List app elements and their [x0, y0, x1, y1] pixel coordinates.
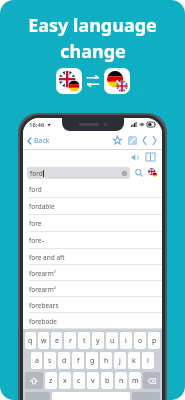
- button[interactable]: fore and aft: [23, 249, 162, 265]
- staticText: Back: [34, 136, 50, 146]
- button[interactable]: Search: [134, 168, 144, 178]
- button[interactable]: fore–: [23, 232, 162, 249]
- button[interactable]: v: [87, 372, 99, 389]
- button[interactable]: Next: [151, 135, 158, 146]
- button[interactable]: Pronounce: [130, 153, 140, 162]
- button[interactable]: fore: [23, 215, 162, 232]
- staticText: t: [83, 336, 86, 346]
- button[interactable]: Previous: [141, 135, 148, 146]
- button[interactable]: forebode: [23, 313, 162, 329]
- button[interactable]: f: [72, 352, 84, 369]
- staticText: forearm¹: [29, 269, 57, 278]
- staticText: i: [125, 336, 127, 346]
- button[interactable]: Key: [25, 372, 43, 389]
- button[interactable]: ford: [23, 181, 162, 198]
- button[interactable]: o: [134, 332, 146, 349]
- staticText: y: [96, 336, 100, 346]
- staticText: Easy language: [28, 13, 157, 38]
- button[interactable]: l: [142, 352, 154, 369]
- button[interactable]: Favourite: [111, 134, 124, 147]
- staticText: ford: [29, 185, 42, 194]
- button[interactable]: forebears: [23, 297, 162, 313]
- button[interactable]: x: [59, 372, 71, 389]
- staticText: j: [119, 356, 121, 366]
- button[interactable]: j: [114, 352, 126, 369]
- staticText: k: [132, 356, 136, 366]
- staticText: r: [69, 336, 72, 346]
- button[interactable]: y: [92, 332, 104, 349]
- staticText: e: [55, 336, 59, 346]
- button[interactable]: z: [45, 372, 57, 389]
- button[interactable]: m: [129, 372, 141, 389]
- button[interactable]: p: [148, 332, 160, 349]
- button[interactable]: n: [115, 372, 127, 389]
- staticText: forearm²: [29, 285, 57, 294]
- button[interactable]: Notes: [127, 135, 138, 146]
- button[interactable]: English to German: [56, 68, 82, 94]
- button[interactable]: i: [120, 332, 132, 349]
- button[interactable]: c: [73, 372, 85, 389]
- button[interactable]: forearm¹: [23, 265, 162, 281]
- staticText: fore: [29, 219, 42, 228]
- staticText: p: [152, 336, 157, 346]
- button[interactable]: Change language: [147, 167, 158, 178]
- button[interactable]: Dictionary: [145, 152, 156, 162]
- button[interactable]: Back: [23, 134, 54, 148]
- button[interactable]: r: [64, 332, 76, 349]
- staticText: b: [105, 376, 110, 386]
- button[interactable]: t: [78, 332, 90, 349]
- staticText: a: [35, 356, 39, 366]
- staticText: ford: [30, 169, 43, 178]
- staticText: d: [62, 356, 67, 366]
- button[interactable]: h: [100, 352, 112, 369]
- button[interactable]: German to English: [104, 68, 130, 94]
- staticText: l: [147, 356, 149, 366]
- button[interactable]: fordable: [23, 198, 162, 215]
- staticText: g: [90, 356, 95, 366]
- staticText: fore–: [29, 236, 45, 245]
- staticText: v: [91, 376, 95, 386]
- staticText: o: [138, 336, 143, 346]
- staticText: m: [132, 376, 139, 386]
- staticText: n: [119, 376, 124, 386]
- staticText: s: [48, 356, 52, 366]
- staticText: fore and aft: [29, 253, 65, 262]
- staticText: u: [110, 336, 115, 346]
- staticText: q: [28, 336, 33, 346]
- staticText: x: [63, 376, 67, 386]
- staticText: h: [104, 356, 109, 366]
- staticText: forebears: [29, 301, 59, 310]
- button[interactable]: b: [101, 372, 113, 389]
- button[interactable]: q: [25, 332, 36, 349]
- staticText: w: [41, 336, 47, 346]
- staticText: fordable: [29, 202, 55, 211]
- staticText: 16:46: [29, 121, 45, 129]
- staticText: c: [77, 376, 81, 386]
- button[interactable]: a: [31, 352, 42, 369]
- staticText: change: [60, 39, 126, 64]
- button[interactable]: ford: [27, 167, 130, 179]
- staticText: f: [77, 356, 80, 366]
- staticText: z: [49, 376, 53, 386]
- button[interactable]: d: [58, 352, 70, 369]
- button[interactable]: forearm²: [23, 281, 162, 297]
- button[interactable]: Key: [143, 372, 160, 389]
- button[interactable]: s: [44, 352, 56, 369]
- button[interactable]: w: [38, 332, 49, 349]
- staticText: forebode: [29, 317, 57, 326]
- button[interactable]: k: [128, 352, 140, 369]
- button[interactable]: e: [51, 332, 62, 349]
- button[interactable]: u: [106, 332, 118, 349]
- button[interactable]: g: [86, 352, 98, 369]
